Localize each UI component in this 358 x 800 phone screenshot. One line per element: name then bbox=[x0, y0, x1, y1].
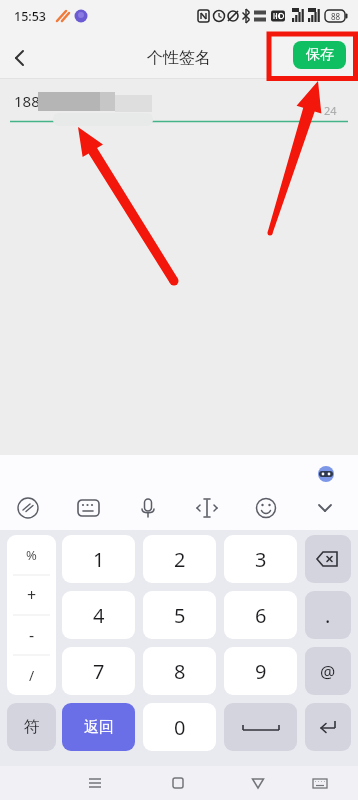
button[interactable]: . bbox=[305, 591, 351, 639]
staticText: 8 bbox=[174, 658, 186, 685]
button[interactable] bbox=[305, 535, 351, 583]
button[interactable]: 符 bbox=[7, 703, 56, 751]
button[interactable]: 8 bbox=[143, 647, 216, 695]
button[interactable] bbox=[4, 42, 36, 74]
staticText: 2 bbox=[174, 546, 186, 573]
staticText: 188 bbox=[14, 91, 40, 111]
button[interactable] bbox=[158, 766, 198, 800]
button[interactable]: 3 bbox=[224, 535, 297, 583]
staticText: 24 bbox=[324, 103, 337, 118]
button[interactable] bbox=[238, 766, 278, 800]
button[interactable] bbox=[300, 766, 340, 800]
button[interactable]: 4 bbox=[62, 591, 135, 639]
button[interactable]: 7 bbox=[62, 647, 135, 695]
staticText: 4 bbox=[93, 602, 105, 629]
staticText: 1 bbox=[93, 546, 105, 573]
button[interactable] bbox=[7, 535, 56, 695]
button[interactable] bbox=[224, 703, 297, 751]
button[interactable] bbox=[75, 766, 115, 800]
staticText: 9 bbox=[255, 658, 267, 685]
staticText: 7 bbox=[93, 658, 105, 685]
staticText: - bbox=[29, 624, 35, 646]
staticText: / bbox=[29, 666, 35, 685]
button[interactable]: 保存 bbox=[293, 41, 346, 69]
staticText: 6 bbox=[255, 602, 267, 629]
staticText: + bbox=[27, 584, 37, 606]
staticText: @ bbox=[320, 660, 336, 683]
staticText: 5 bbox=[174, 602, 186, 629]
staticText: 88 bbox=[331, 11, 341, 21]
staticText: 15:53 bbox=[14, 8, 47, 25]
staticText: 3 bbox=[255, 546, 267, 573]
staticText: 返回 bbox=[84, 718, 114, 737]
button[interactable]: 返回 bbox=[62, 703, 135, 751]
staticText: 保存 bbox=[306, 46, 334, 64]
staticText: 符 bbox=[24, 717, 40, 737]
button[interactable]: 1 bbox=[62, 535, 135, 583]
button[interactable]: @ bbox=[305, 647, 351, 695]
button[interactable]: 9 bbox=[224, 647, 297, 695]
staticText: 0 bbox=[174, 714, 186, 741]
staticText: 个性签名 bbox=[147, 48, 211, 68]
button[interactable]: 5 bbox=[143, 591, 216, 639]
staticText: . bbox=[325, 602, 331, 629]
button[interactable] bbox=[305, 703, 351, 751]
staticText: % bbox=[26, 546, 37, 564]
button[interactable]: 6 bbox=[224, 591, 297, 639]
button[interactable]: 2 bbox=[143, 535, 216, 583]
button[interactable]: 0 bbox=[143, 703, 216, 751]
